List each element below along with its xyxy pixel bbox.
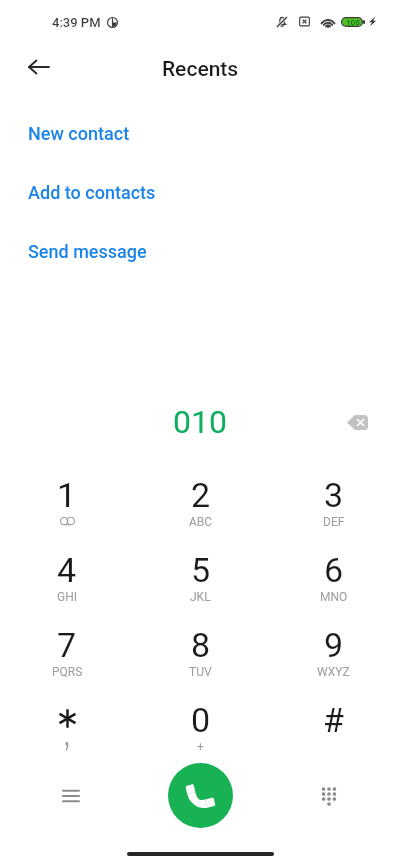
- staticText: 6: [324, 550, 344, 590]
- staticText: 7: [57, 625, 77, 665]
- staticText: 4: [57, 550, 77, 590]
- staticText: #: [323, 700, 344, 740]
- button[interactable]: 9: [267, 618, 400, 693]
- button[interactable]: New contact: [0, 116, 400, 150]
- staticText: JKL: [190, 590, 211, 602]
- staticText: TUV: [189, 665, 212, 677]
- button[interactable]: #: [267, 693, 400, 768]
- button[interactable]: Add to contacts: [0, 175, 400, 209]
- button[interactable]: 1: [0, 468, 134, 543]
- staticText: MNO: [320, 590, 348, 602]
- button[interactable]: Backspace: [335, 400, 379, 444]
- staticText: 100: [346, 18, 360, 27]
- button[interactable]: Send message: [0, 234, 400, 268]
- button[interactable]: 0: [134, 693, 267, 768]
- button[interactable]: Call history menu: [48, 773, 93, 818]
- staticText: DEF: [323, 515, 345, 527]
- staticText: 2: [191, 475, 211, 515]
- staticText: 1: [57, 475, 77, 515]
- staticText: WXYZ: [317, 665, 350, 677]
- button[interactable]: Dialpad: [306, 773, 351, 818]
- button[interactable]: 5: [134, 543, 267, 618]
- button[interactable]: [0, 693, 134, 768]
- button[interactable]: 7: [0, 618, 134, 693]
- staticText: 0: [191, 700, 211, 740]
- staticText: GHI: [57, 590, 77, 602]
- staticText: Recents: [162, 57, 239, 82]
- staticText: ABC: [189, 515, 213, 527]
- button[interactable]: Call: [168, 763, 233, 828]
- staticText: Add to contacts: [28, 182, 156, 203]
- button[interactable]: 4: [0, 543, 134, 618]
- button[interactable]: 3: [267, 468, 400, 543]
- staticText: Send message: [28, 241, 147, 262]
- staticText: 3: [324, 475, 344, 515]
- staticText: 4:39 PM: [52, 15, 101, 30]
- button[interactable]: 2: [134, 468, 267, 543]
- button[interactable]: 6: [267, 543, 400, 618]
- staticText: +: [197, 740, 204, 752]
- staticText: 8: [191, 625, 211, 665]
- staticText: 9: [324, 625, 344, 665]
- button[interactable]: Back: [13, 45, 63, 89]
- staticText: New contact: [28, 123, 130, 144]
- button[interactable]: 8: [134, 618, 267, 693]
- staticText: 5: [191, 550, 211, 590]
- staticText: 010: [173, 403, 227, 441]
- staticText: PQRS: [52, 665, 83, 677]
